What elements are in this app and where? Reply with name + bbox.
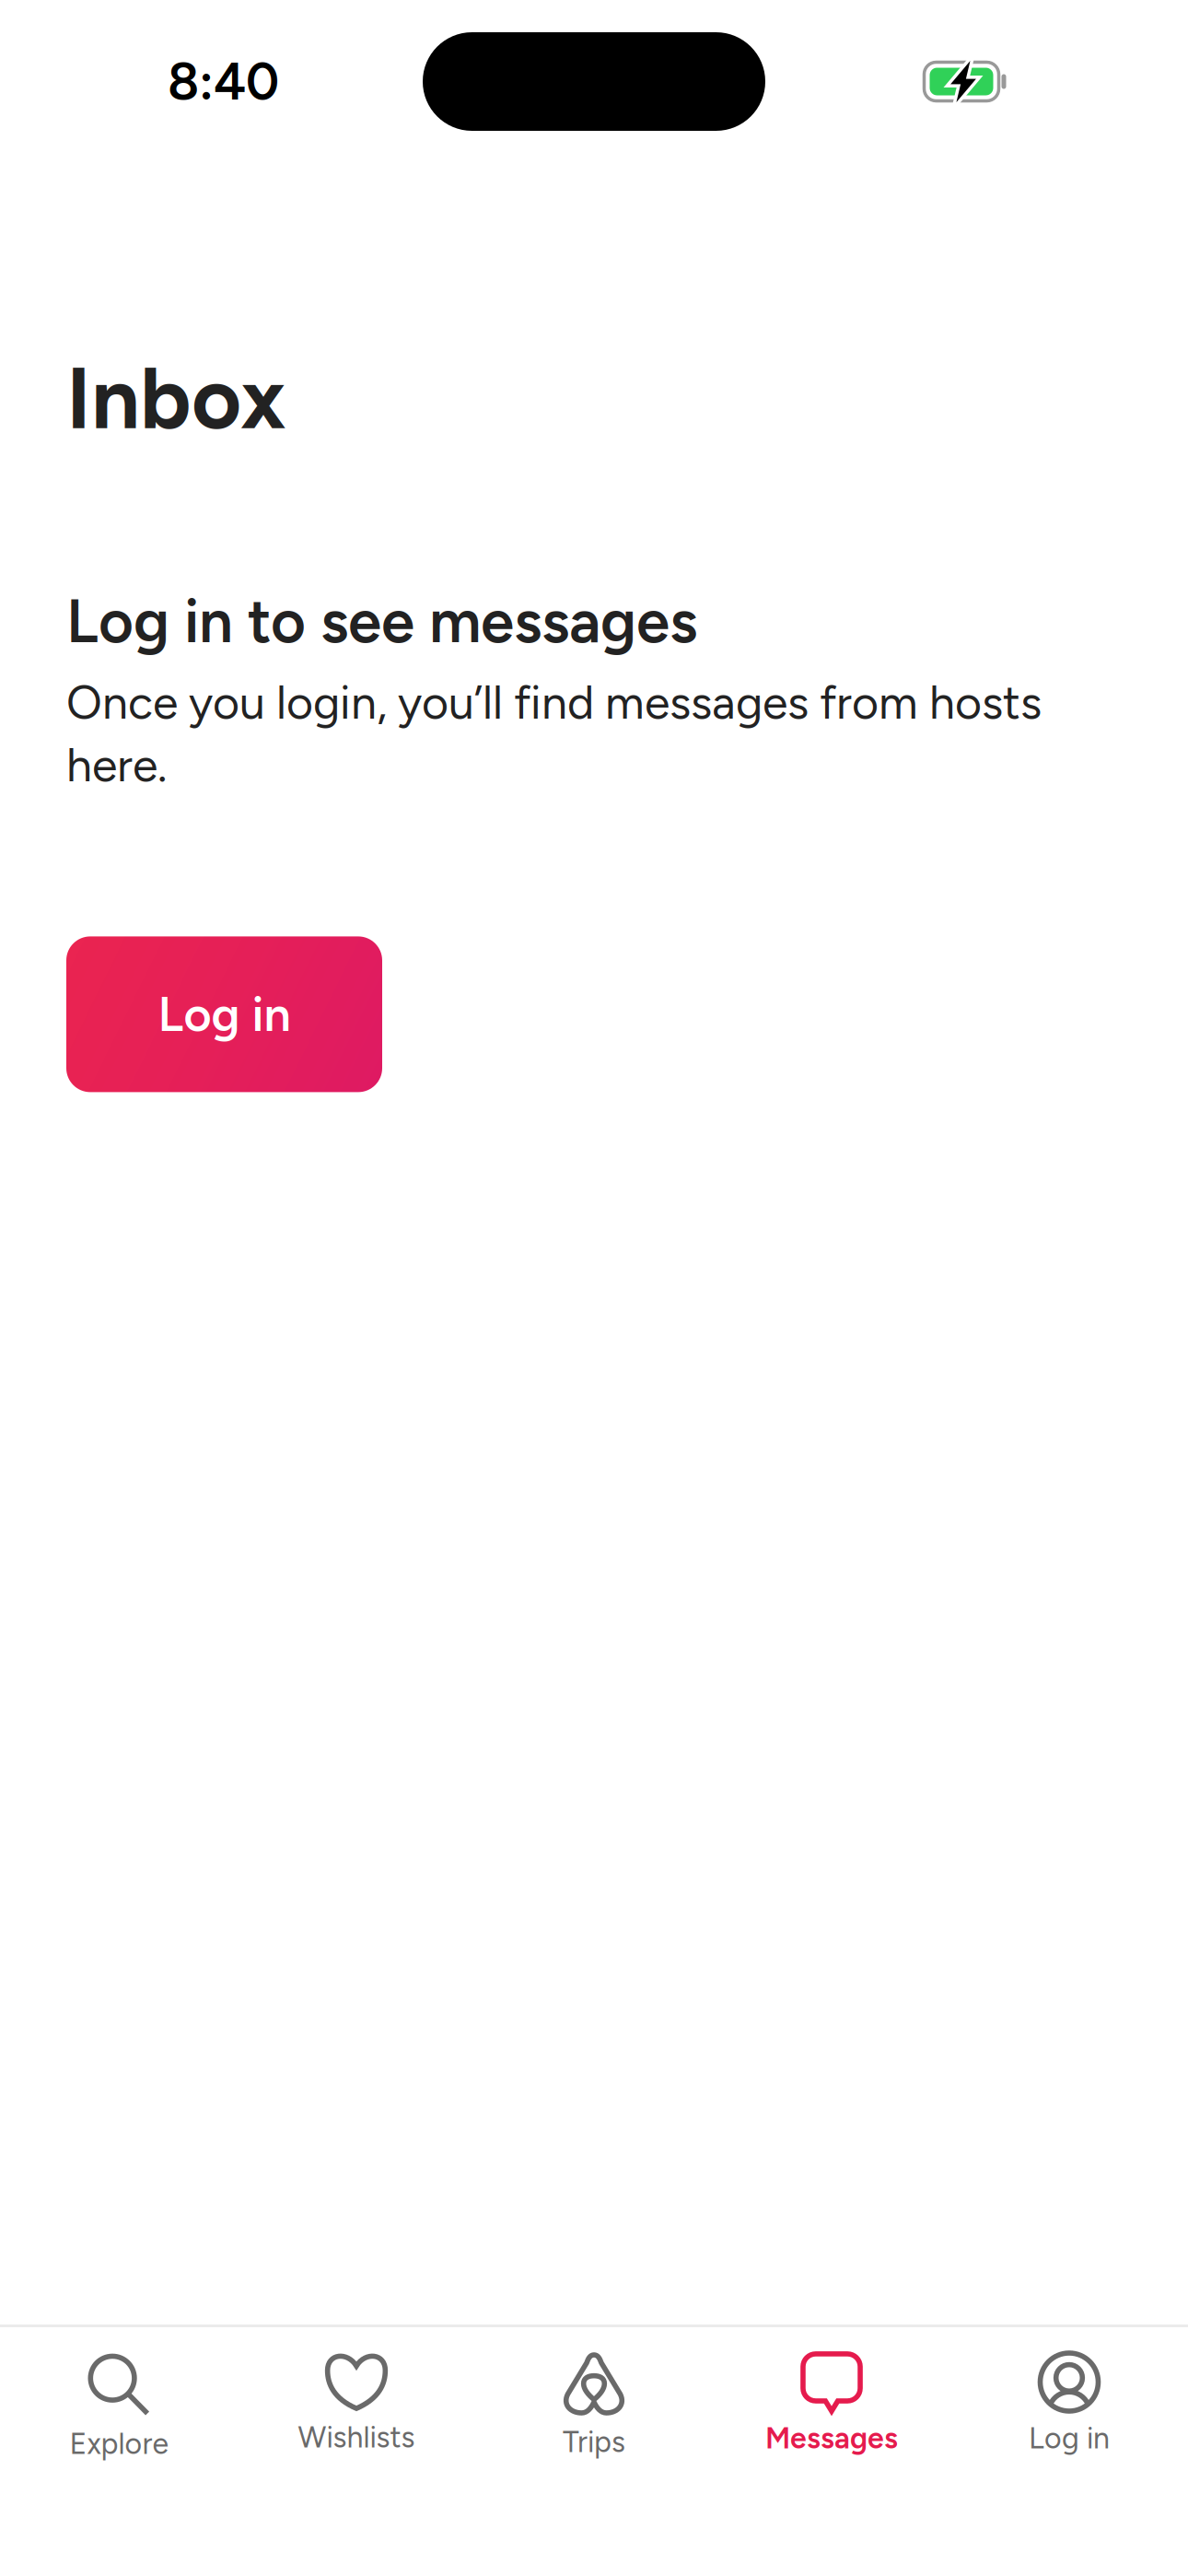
staticText: 8:40 <box>168 51 279 112</box>
staticText: Log in to see messages <box>66 585 697 657</box>
staticText: Trips <box>563 2424 625 2459</box>
staticText: Log in <box>1029 2420 1110 2456</box>
button[interactable]: Trips <box>475 2327 713 2465</box>
staticText: Log in <box>158 986 291 1043</box>
button[interactable]: Log in <box>950 2327 1188 2465</box>
button[interactable]: Messages <box>713 2327 950 2465</box>
staticText: Inbox <box>66 346 286 450</box>
button[interactable]: Explore <box>0 2327 238 2465</box>
staticText: Messages <box>765 2420 898 2456</box>
staticText: Once you login, you’ll find messages fro… <box>66 675 1042 793</box>
button[interactable]: Wishlists <box>238 2327 475 2465</box>
staticText: Explore <box>70 2426 168 2461</box>
button[interactable]: Log in <box>66 936 382 1092</box>
staticText: Wishlists <box>298 2419 415 2455</box>
